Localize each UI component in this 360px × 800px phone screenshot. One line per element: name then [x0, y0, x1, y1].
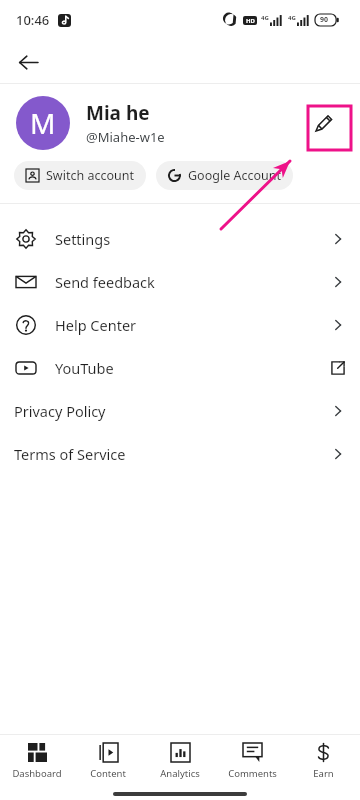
- button[interactable]: Back: [8, 42, 48, 82]
- staticText: Help Center: [55, 315, 137, 335]
- button[interactable]: Edit profile: [304, 103, 344, 143]
- staticText: 4G: [288, 14, 296, 22]
- staticText: 4G: [261, 14, 269, 22]
- staticText: HD: [246, 17, 255, 25]
- staticText: Analytics: [160, 767, 200, 780]
- button[interactable]: Switch account: [14, 161, 146, 190]
- button[interactable]: Google Account: [156, 161, 293, 190]
- staticText: 10:46: [16, 11, 50, 29]
- button[interactable]: Settings: [0, 217, 360, 260]
- staticText: Send feedback: [55, 272, 155, 292]
- staticText: Settings: [55, 229, 111, 249]
- staticText: Terms of Service: [14, 444, 126, 464]
- button[interactable]: Terms of Service: [0, 432, 360, 475]
- button[interactable]: Help Center: [0, 303, 360, 346]
- staticText: Switch account: [46, 167, 134, 184]
- button[interactable]: Privacy Policy: [0, 389, 360, 432]
- button[interactable]: Analytics: [145, 742, 215, 780]
- button[interactable]: YouTube: [0, 346, 360, 389]
- staticText: YouTube: [55, 358, 114, 378]
- button[interactable]: Comments: [217, 742, 287, 780]
- staticText: Content: [90, 767, 126, 780]
- staticText: M: [30, 104, 56, 142]
- staticText: Privacy Policy: [14, 401, 106, 421]
- staticText: 90: [320, 15, 329, 25]
- staticText: Dashboard: [12, 767, 62, 780]
- button[interactable]: Earn: [288, 742, 358, 780]
- button[interactable]: Send feedback: [0, 260, 360, 303]
- staticText: Earn: [313, 767, 334, 780]
- staticText: @Miahe-w1e: [86, 128, 165, 146]
- button[interactable]: Dashboard: [2, 742, 72, 780]
- staticText: Comments: [228, 767, 277, 780]
- staticText: Mia he: [86, 100, 150, 126]
- staticText: Google Account: [188, 167, 281, 184]
- button[interactable]: Content: [73, 742, 143, 780]
